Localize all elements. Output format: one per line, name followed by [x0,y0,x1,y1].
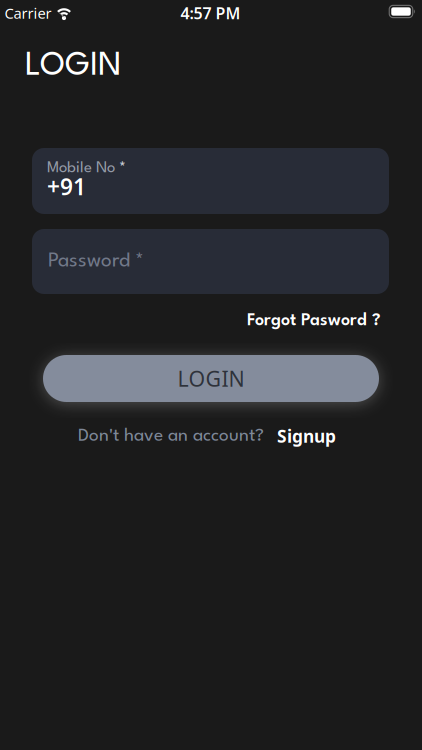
staticText: Signup [277,424,336,447]
button[interactable]: Password * [32,229,389,294]
staticText: Forgot Pasword ? [247,313,381,329]
staticText: Mobile No [47,160,115,176]
button[interactable]: LOGIN [43,355,379,402]
staticText: Password * [48,252,144,271]
staticText: LOGIN [25,51,122,82]
staticText: +91 [47,171,86,201]
button[interactable]: Mobile No [32,148,389,214]
button[interactable]: Signup [277,424,336,447]
staticText: LOGIN [177,364,244,393]
button[interactable]: Forgot Pasword ? [247,313,381,329]
staticText: Don't have an account? [78,427,264,445]
staticText: Carrier [4,3,51,23]
staticText: 4:57 PM [180,2,240,24]
staticText: * [119,160,126,176]
